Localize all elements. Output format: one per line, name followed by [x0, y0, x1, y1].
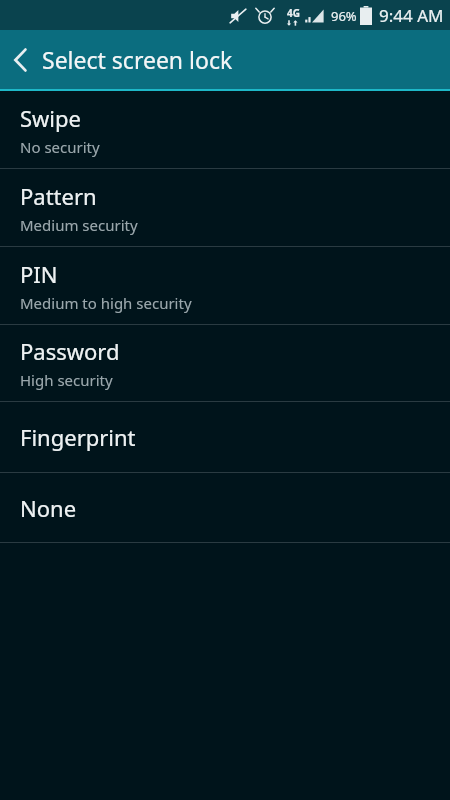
- button[interactable]: Pattern: [0, 169, 450, 246]
- staticText: No security: [20, 137, 100, 157]
- staticText: PIN: [20, 259, 58, 289]
- staticText: Fingerprint: [20, 422, 136, 452]
- staticText: Pattern: [20, 181, 97, 211]
- button[interactable]: Password: [0, 325, 450, 401]
- staticText: 4G: [287, 6, 300, 20]
- button[interactable]: None: [0, 473, 450, 542]
- staticText: Password: [20, 336, 120, 366]
- staticText: 96%: [331, 7, 357, 25]
- staticText: Select screen lock: [42, 44, 233, 75]
- staticText: 9:44 AM: [379, 4, 444, 27]
- button[interactable]: Back: [0, 30, 42, 89]
- button[interactable]: Fingerprint: [0, 402, 450, 472]
- staticText: Medium to high security: [20, 293, 192, 313]
- staticText: High security: [20, 370, 113, 390]
- staticText: None: [20, 493, 77, 523]
- button[interactable]: Swipe: [0, 91, 450, 168]
- staticText: Swipe: [20, 103, 81, 133]
- staticText: Medium security: [20, 215, 138, 235]
- button[interactable]: PIN: [0, 247, 450, 324]
